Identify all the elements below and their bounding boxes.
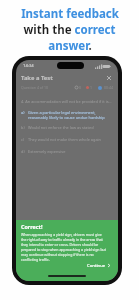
button[interactable]: d): [21, 149, 113, 154]
staticText: They would not make them whole again: [28, 137, 102, 142]
staticText: Instant feedback: [21, 6, 119, 22]
button[interactable]: b): [21, 125, 113, 130]
button[interactable]: a): [21, 110, 113, 121]
staticText: answer.: [48, 38, 92, 54]
staticText: When approaching a yield sign, drivers m…: [21, 232, 107, 262]
staticText: Would not enforce the law as stated: [28, 125, 94, 130]
staticText: Take a Test: [21, 74, 53, 82]
staticText: with the correct: [23, 22, 116, 38]
staticText: 0: [79, 85, 82, 90]
staticText: d): [21, 149, 25, 154]
button[interactable]: c): [21, 137, 113, 142]
staticText: Given a particular legal environment, re…: [28, 110, 113, 121]
button[interactable]: Continue: [85, 262, 113, 269]
staticText: Question 4 of 10: [21, 85, 49, 90]
staticText: 4. An accommodation will not be provided…: [21, 99, 112, 104]
staticText: b): [21, 125, 25, 130]
staticText: 1: [90, 85, 93, 90]
button[interactable]: Close: [105, 74, 113, 82]
staticText: Continue: [87, 263, 106, 268]
staticText: 00:44: [104, 85, 113, 90]
staticText: 14:34: [23, 63, 34, 69]
staticText: c): [21, 137, 25, 142]
staticText: Correct!: [21, 223, 43, 230]
staticText: a): [21, 110, 25, 115]
staticText: Extremely expensive: [28, 149, 66, 154]
